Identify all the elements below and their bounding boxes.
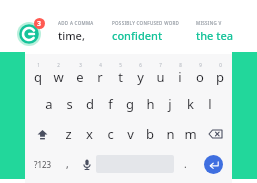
staticText: 9 [199,62,202,68]
staticText: m [184,125,197,143]
button[interactable]: k [180,89,200,119]
staticText: e [76,68,84,86]
staticText: f [108,95,113,113]
button[interactable]: f [100,89,120,119]
staticText: the tea [196,28,234,43]
staticText: h [146,95,155,113]
button[interactable]: d [80,89,100,119]
button[interactable]: POSSIBLY CONFUSED WORD [106,15,185,48]
button[interactable]: h [140,89,160,119]
button[interactable]: m [180,119,200,149]
staticText: 2 [57,62,60,68]
staticText: MISSING V [196,20,222,26]
button[interactable]: g [120,89,140,119]
staticText: y [137,68,144,86]
button[interactable]: x [79,119,100,149]
button[interactable]: 0 [210,58,230,89]
staticText: 3 [79,62,82,68]
button[interactable]: Backspace [200,119,230,149]
button[interactable]: j [160,89,180,119]
staticText: 6 [139,62,142,68]
staticText: 4 [99,62,102,68]
button[interactable]: . [174,149,196,179]
staticText: v [127,125,134,143]
staticText: z [65,125,72,143]
button[interactable]: 8 [170,58,190,89]
button[interactable]: c [100,119,120,149]
button[interactable]: 1 [27,58,48,89]
staticText: o [196,68,204,86]
button[interactable]: Voice input [77,149,96,179]
button[interactable]: Grammarly [17,18,45,46]
button[interactable]: 4 [90,58,110,89]
staticText: t [118,68,123,86]
staticText: r [97,68,103,86]
staticText: q [34,68,42,86]
staticText: ADD A COMMA [58,20,94,26]
staticText: time, [58,28,85,43]
button[interactable]: Enter [196,149,230,179]
staticText: , [66,157,69,171]
staticText: 1 [37,62,40,68]
staticText: n [166,125,175,143]
staticText: 7 [159,62,162,68]
button[interactable]: , [58,149,77,179]
button[interactable]: 6 [130,58,150,89]
button[interactable]: v [120,119,140,149]
staticText: l [208,95,212,113]
staticText: . [184,157,187,171]
button[interactable]: MISSING V [190,15,242,48]
button[interactable]: Shift [27,119,58,149]
staticText: 5 [119,62,122,68]
button[interactable]: n [160,119,180,149]
button[interactable]: 3 [69,58,90,89]
staticText: x [86,125,93,143]
staticText: d [86,95,94,113]
button[interactable]: 2 [48,58,69,89]
button[interactable]: z [58,119,79,149]
button[interactable]: 9 [190,58,210,89]
staticText: POSSIBLY CONFUSED WORD [112,20,180,26]
staticText: g [126,95,134,113]
button[interactable]: s [59,89,80,119]
staticText: 8 [179,62,182,68]
staticText: j [168,95,172,113]
staticText: 0 [219,62,222,68]
button[interactable]: b [140,119,160,149]
staticText: u [156,68,165,86]
staticText: w [53,68,64,86]
staticText: s [66,95,73,113]
button[interactable]: 5 [110,58,130,89]
button[interactable]: a [38,89,59,119]
staticText: k [187,95,194,113]
button[interactable]: ?123 [27,149,58,179]
staticText: c [107,125,114,143]
staticText: p [216,68,224,86]
staticText: i [178,68,182,86]
button[interactable]: ADD A COMMA [52,15,101,48]
staticText: 3 [37,19,42,29]
staticText: b [146,125,154,143]
staticText: a [45,95,53,113]
staticText: ?123 [34,159,52,170]
button[interactable]: l [200,89,220,119]
button[interactable]: 7 [150,58,170,89]
staticText: confident [112,28,163,43]
